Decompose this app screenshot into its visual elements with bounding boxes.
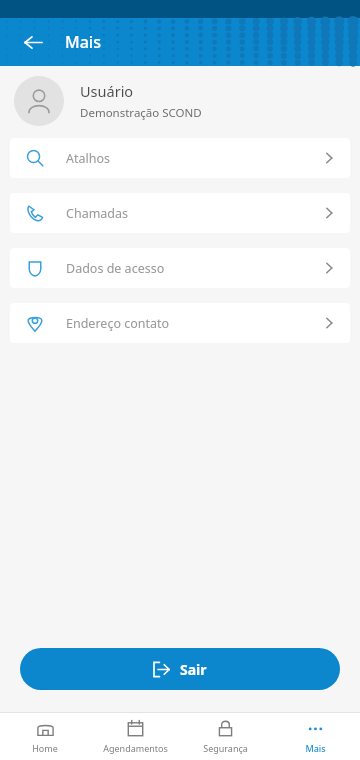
staticText: Usuário [80, 81, 134, 101]
staticText: Endereço contato [66, 315, 170, 332]
staticText: Home [32, 742, 58, 754]
button[interactable]: Sair [20, 648, 340, 690]
button[interactable]: Chamadas [10, 193, 350, 233]
staticText: Mais [305, 742, 326, 754]
staticText: Demonstração SCOND [80, 105, 202, 121]
button[interactable]: Endereço contato [10, 303, 350, 343]
button[interactable]: Atalhos [10, 138, 350, 178]
staticText: Mais [65, 31, 101, 53]
staticText: Sair [180, 660, 207, 679]
button[interactable]: Mais [270, 712, 360, 760]
button[interactable]: Back [18, 27, 48, 57]
staticText: Chamadas [66, 205, 129, 222]
staticText: Agendamentos [103, 742, 168, 754]
button[interactable]: Dados de acesso [10, 248, 350, 288]
staticText: Segurança [203, 742, 248, 754]
button[interactable]: Agendamentos [90, 712, 180, 760]
staticText: Dados de acesso [66, 260, 165, 277]
button[interactable]: Usuário [0, 66, 360, 135]
button[interactable]: Home [0, 712, 90, 760]
button[interactable]: Segurança [180, 712, 270, 760]
staticText: Atalhos [66, 150, 111, 167]
